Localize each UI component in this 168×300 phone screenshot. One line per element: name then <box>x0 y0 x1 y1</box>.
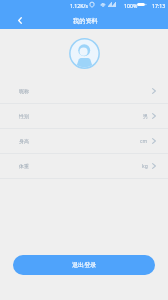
button[interactable]: 昵称 <box>0 79 168 103</box>
staticText: 退出登录 <box>72 261 97 269</box>
button[interactable]: 身高 <box>0 129 168 153</box>
staticText: 身高 <box>19 138 29 144</box>
button[interactable]: Back <box>11 12 28 29</box>
staticText: kg <box>142 163 148 170</box>
staticText: cm <box>140 138 148 145</box>
staticText: 男 <box>143 113 148 119</box>
staticText: 1.12K/s <box>70 2 88 9</box>
staticText: 我的资料 <box>73 17 98 25</box>
button[interactable]: 退出登录 <box>13 255 155 275</box>
button[interactable]: 性别 <box>0 104 168 128</box>
staticText: 100% <box>124 2 138 9</box>
staticText: 17:13 <box>152 2 166 9</box>
staticText: 性别 <box>19 113 29 119</box>
staticText: 体重 <box>19 163 29 169</box>
staticText: 昵称 <box>19 88 29 94</box>
button[interactable]: 体重 <box>0 154 168 178</box>
